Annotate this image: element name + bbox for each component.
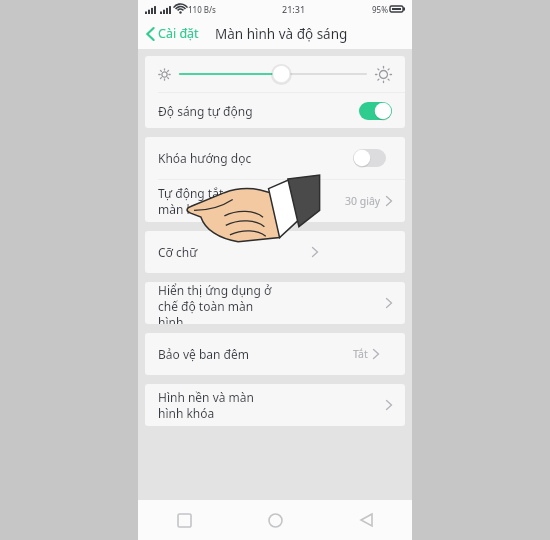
staticText: 30 giây [345,194,381,208]
button[interactable]: Bảo vệ ban đêm [145,333,405,375]
button[interactable]: Toggle off [353,149,386,167]
staticText: 95% [372,4,388,15]
staticText: 110 B/s [188,4,217,15]
staticText: Khóa hướng dọc [158,150,252,166]
staticText: Cỡ chữ [158,244,198,260]
staticText: Màn hình và độ sáng [215,25,348,43]
button[interactable]: Cài đặt [138,21,207,46]
button[interactable]: Cỡ chữ [145,231,405,273]
staticText: Tắt [353,347,368,361]
staticText: Hiển thị ứng dụng ở chế độ toàn màn hình [158,282,272,324]
button[interactable]: Toggle on [359,102,392,120]
staticText: 21:31 [282,3,306,15]
button[interactable]: Hình nền và màn hình khóa [145,384,405,426]
button[interactable]: Độ sáng tự động [145,93,405,128]
staticText: Độ sáng tự động [158,103,253,119]
button[interactable]: Hiển thị ứng dụng ở chế độ toàn màn hình [145,282,405,324]
button[interactable]: Tự động tắt màn hình [145,180,405,222]
staticText: Bảo vệ ban đêm [158,346,249,362]
button[interactable]: Back [321,500,412,540]
staticText: Hình nền và màn hình khóa [158,389,272,421]
button[interactable]: Khóa hướng dọc [145,137,405,179]
staticText: Tự động tắt màn hình [158,185,251,217]
button[interactable]: Recents [138,500,230,540]
staticText: Cài đặt [158,25,199,42]
button[interactable]: Home [230,500,321,540]
